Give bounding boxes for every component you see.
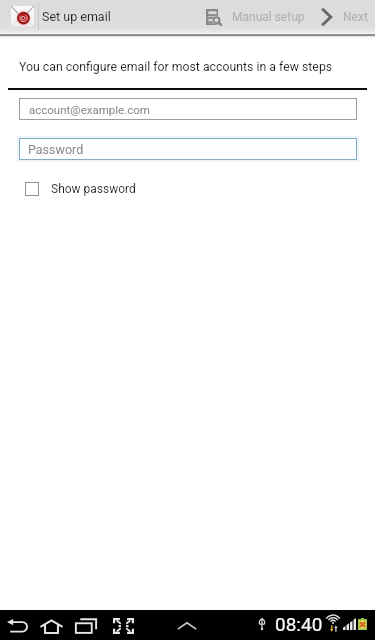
button[interactable]: account@example.com	[19, 98, 357, 120]
staticText: Show password	[51, 182, 136, 196]
staticText: You can configure email for most account…	[19, 60, 333, 74]
other: Next	[322, 9, 332, 25]
other: Manual setup	[206, 9, 221, 25]
staticText: Set up email	[42, 9, 111, 24]
button[interactable]: Next	[311, 0, 375, 33]
staticText: Next	[343, 10, 368, 24]
button[interactable]: Back	[0, 610, 34, 640]
staticText: Manual setup	[232, 10, 305, 24]
button[interactable]: Set up email	[0, 0, 111, 33]
button[interactable]: Password	[17, 136, 359, 162]
button[interactable]: Expand notifications	[170, 610, 204, 640]
button[interactable]: Recent apps	[69, 610, 103, 640]
staticText: 08:40	[275, 613, 323, 635]
staticText: Password	[28, 142, 84, 157]
button[interactable]: Manual setup	[196, 0, 311, 33]
button[interactable]: Home	[34, 610, 68, 640]
staticText: account@example.com	[29, 103, 150, 116]
button[interactable]: Show password	[25, 182, 136, 196]
button[interactable]: Screenshot	[106, 610, 140, 640]
